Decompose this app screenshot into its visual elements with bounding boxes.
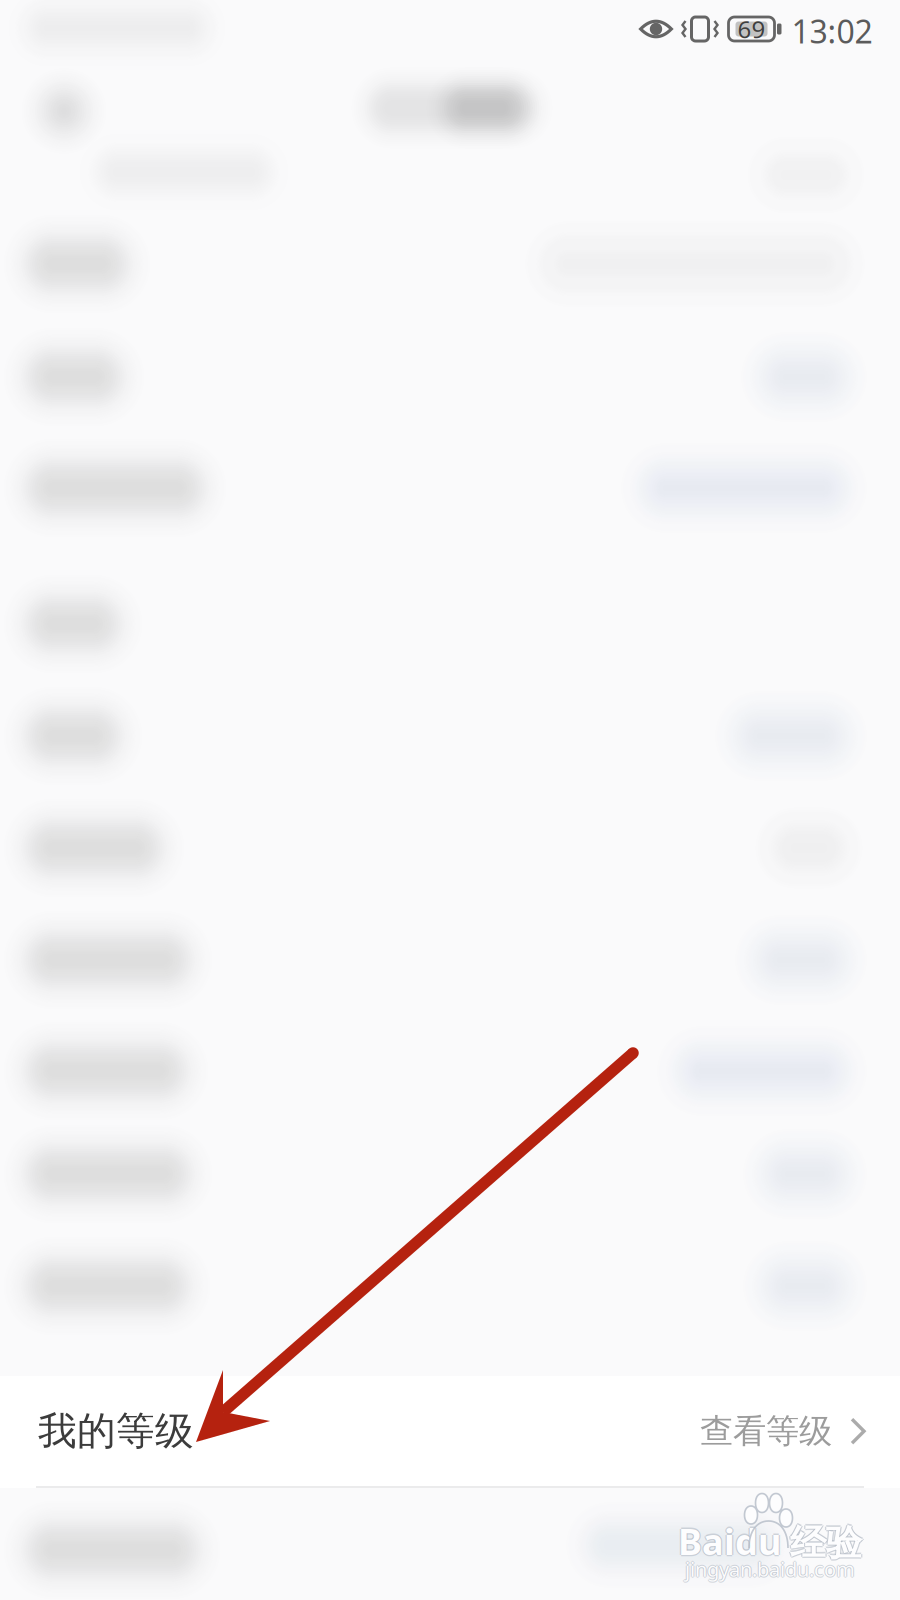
staticText: jingyan.baidu.com [685,1555,855,1581]
staticText: Baidu 经验 [677,1517,861,1565]
button[interactable]: 我的等级 [0,1376,900,1488]
staticText: 69 [737,13,765,45]
staticText: 我的等级 [38,1407,194,1455]
staticText: jingyan.baidu.com [684,1556,854,1582]
staticText: Baidu 经验 [678,1517,862,1565]
staticText: jingyan.baidu.com [686,1556,856,1582]
staticText: 查看等级 [700,1411,832,1452]
staticText: 13:02 [791,10,872,52]
staticText: jingyan.baidu.com [685,1557,855,1583]
staticText: Baidu 经验 [679,1517,863,1565]
staticText: jingyan.baidu.com [685,1556,855,1582]
staticText: Baidu 经验 [678,1516,862,1564]
staticText: Baidu 经验 [678,1518,862,1566]
